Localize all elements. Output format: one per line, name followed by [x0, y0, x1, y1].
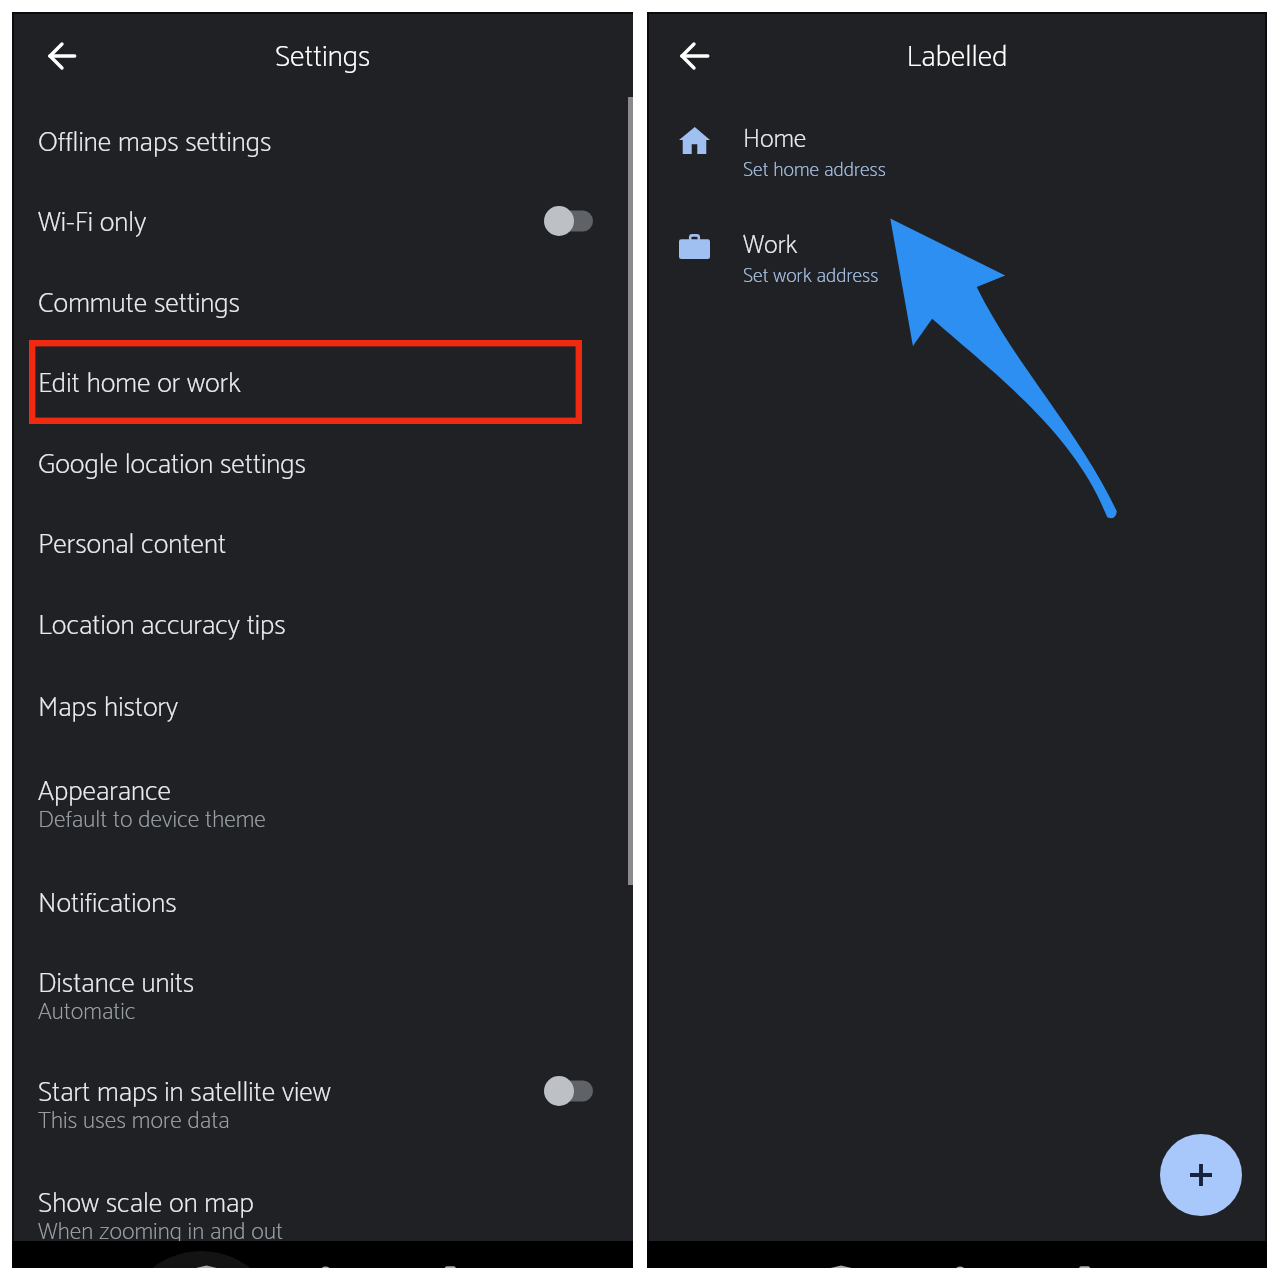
staticText: Offline maps settings — [38, 120, 272, 166]
staticText: Labelled — [647, 33, 1267, 82]
button[interactable] — [12, 185, 633, 265]
staticText: Show scale on map — [38, 1181, 254, 1227]
staticText: Home — [743, 118, 807, 161]
button[interactable] — [12, 507, 633, 587]
button[interactable] — [12, 346, 633, 426]
button[interactable]: Back — [37, 31, 87, 81]
staticText: Work — [743, 224, 798, 267]
button[interactable] — [12, 1166, 633, 1268]
staticText: Appearance — [38, 769, 171, 815]
staticText: Commute settings — [38, 281, 240, 327]
staticText: Personal content — [38, 522, 227, 568]
button[interactable]: Add new label — [1160, 1134, 1242, 1216]
staticText: Distance units — [38, 961, 195, 1007]
staticText: Wi-Fi only — [38, 200, 147, 246]
staticText: Set home address — [743, 154, 886, 187]
button[interactable] — [647, 100, 1267, 192]
staticText: Start maps in satellite view — [38, 1070, 331, 1116]
staticText: Set work address — [743, 260, 879, 293]
button[interactable] — [12, 105, 633, 185]
staticText: This uses more data — [38, 1102, 230, 1141]
button[interactable]: Back — [669, 31, 719, 81]
staticText: When zooming in and out — [38, 1213, 283, 1252]
button[interactable] — [12, 427, 633, 507]
staticText: Google location settings — [38, 442, 306, 488]
staticText: Edit home or work — [38, 361, 241, 407]
staticText: Maps history — [38, 685, 179, 731]
button[interactable] — [12, 866, 633, 946]
button[interactable] — [647, 206, 1267, 298]
button[interactable] — [12, 670, 633, 750]
button[interactable] — [12, 588, 633, 668]
staticText: Location accuracy tips — [38, 603, 286, 649]
button[interactable] — [12, 946, 633, 1056]
staticText: Default to device theme — [38, 801, 266, 840]
button[interactable] — [12, 266, 633, 346]
staticText: Automatic — [38, 993, 136, 1032]
staticText: Notifications — [38, 881, 177, 927]
staticText: Settings — [12, 33, 633, 82]
button[interactable] — [12, 754, 633, 864]
button[interactable] — [12, 1055, 633, 1165]
